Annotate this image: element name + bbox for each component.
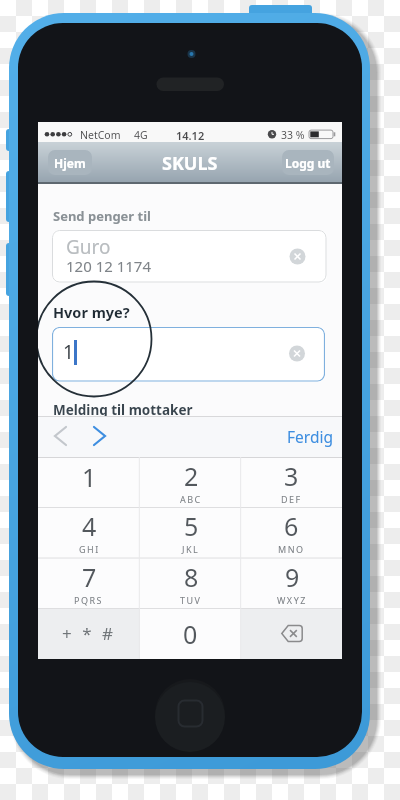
staticText: 14.12 — [176, 128, 205, 143]
staticText: Guro — [66, 234, 111, 260]
staticText: 3 — [284, 459, 299, 493]
staticText: JKL — [182, 543, 200, 555]
staticText: 6 — [284, 509, 299, 543]
staticText: 4 — [82, 509, 97, 543]
staticText: + * # — [62, 622, 116, 645]
staticText: WXYZ — [277, 594, 307, 606]
button[interactable]: 3 — [241, 457, 342, 507]
button[interactable]: 6 — [241, 507, 342, 557]
button[interactable]: 7 — [38, 557, 140, 608]
staticText: 0 — [183, 617, 198, 651]
button[interactable] — [241, 608, 342, 659]
staticText: PQRS — [74, 594, 104, 606]
button[interactable]: Logg ut — [282, 150, 334, 175]
button[interactable]: 0 — [140, 608, 241, 659]
staticText: 1 — [63, 339, 74, 365]
staticText: Melding til mottaker — [53, 401, 193, 419]
staticText: Hvor mye? — [53, 302, 130, 322]
staticText: 7 — [82, 560, 97, 594]
staticText: 2 — [184, 459, 199, 493]
staticText: DEF — [281, 493, 302, 505]
staticText: 33 % — [281, 128, 305, 142]
staticText: 120 12 1174 — [66, 256, 152, 276]
staticText: Hjem — [54, 155, 86, 171]
button[interactable]: 8 — [140, 557, 241, 608]
button[interactable]: Ferdig — [287, 426, 333, 447]
button[interactable]: + * # — [38, 608, 140, 659]
staticText: ABC — [180, 493, 202, 505]
staticText: 8 — [184, 560, 199, 594]
button[interactable]: 1 — [38, 457, 140, 507]
staticText: 4G — [134, 128, 148, 142]
staticText: GHI — [79, 543, 100, 555]
button[interactable]: 5 — [140, 507, 241, 557]
staticText: 5 — [184, 509, 199, 543]
staticText: Logg ut — [285, 155, 331, 171]
staticText: MNO — [278, 543, 305, 555]
button[interactable]: Hjem — [48, 150, 92, 175]
button[interactable]: 9 — [241, 557, 342, 608]
staticText: NetCom — [80, 128, 121, 142]
button[interactable]: Guro — [52, 230, 327, 283]
button[interactable]: 2 — [140, 457, 241, 507]
staticText: Send penger til — [53, 207, 151, 225]
staticText: 1 — [82, 460, 97, 494]
button[interactable]: 4 — [38, 507, 140, 557]
staticText: 9 — [285, 560, 300, 594]
button[interactable] — [86, 421, 114, 451]
button[interactable] — [48, 421, 76, 451]
staticText: TUV — [180, 594, 202, 606]
staticText: SKULS — [162, 151, 218, 176]
button[interactable]: 1 — [52, 327, 325, 382]
